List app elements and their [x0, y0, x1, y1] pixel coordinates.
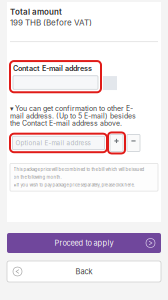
staticText: on the following month.	[13, 175, 61, 180]
staticText: ▾ You can get confirmation to other E-	[10, 104, 133, 113]
staticText: Proceed to apply	[54, 238, 113, 247]
button[interactable]: Remove e-mail address	[125, 132, 142, 153]
button[interactable]: Back	[7, 261, 161, 282]
staticText: This package price will be combined to t…	[13, 167, 144, 172]
staticText: 199 THB (Before VAT)	[10, 18, 92, 27]
staticText: the Contact E-mail address above.	[10, 119, 122, 127]
staticText: Back	[75, 267, 92, 276]
staticText: mail address. (Up to 5 E-mail) besides	[10, 112, 136, 120]
button[interactable]: Proceed to apply	[7, 233, 161, 253]
staticText: Total amount	[10, 7, 62, 17]
button[interactable]: Add e-mail address	[108, 132, 125, 153]
staticText: Contact E-mail address	[13, 64, 92, 73]
staticText: Optional E-mail address	[15, 139, 90, 147]
staticText: ※If you wish to pay package price separa…	[13, 182, 134, 188]
